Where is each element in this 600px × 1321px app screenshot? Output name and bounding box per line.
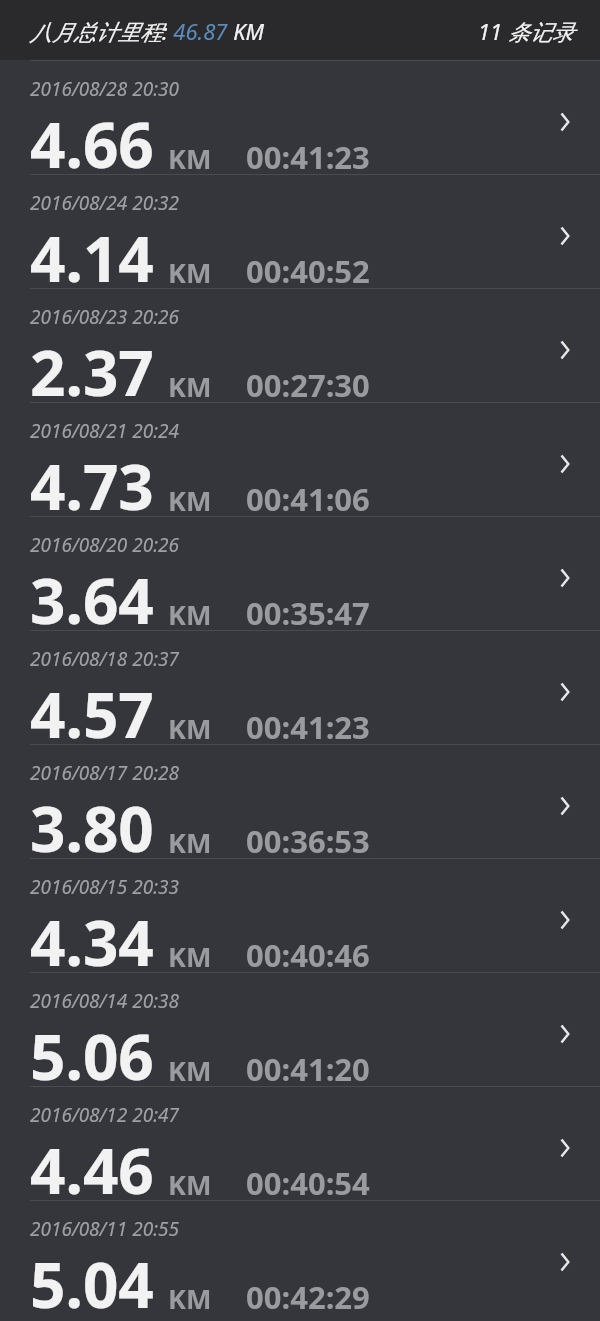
staticText: 4.46 [30, 1128, 154, 1212]
other: View run details [558, 908, 572, 932]
staticText: 八月总计里程: 46.87 KM [30, 16, 265, 46]
staticText: 2016/08/18 20:37 [30, 646, 179, 672]
staticText: 00:40:54 [246, 1162, 370, 1204]
other: View run details [558, 794, 572, 818]
staticText: 11 条记录 [478, 16, 574, 46]
staticText: KM [168, 1166, 212, 1203]
staticText: 00:35:47 [246, 592, 370, 634]
button[interactable]: 2016/08/23 20:26 [0, 288, 600, 402]
staticText: 00:42:29 [246, 1276, 370, 1318]
button[interactable]: 2016/08/28 20:30 [0, 60, 600, 174]
staticText: KM [168, 1280, 212, 1317]
other: View run details [558, 680, 572, 704]
staticText: 2016/08/12 20:47 [30, 1102, 179, 1128]
staticText: 5.06 [30, 1014, 154, 1098]
staticText: KM [168, 368, 212, 405]
staticText: 2016/08/21 20:24 [30, 418, 179, 444]
other: View run details [558, 1250, 572, 1274]
staticText: 00:41:23 [246, 706, 370, 748]
staticText: KM [168, 1052, 212, 1089]
staticText: 2016/08/28 20:30 [30, 76, 179, 102]
staticText: 2016/08/23 20:26 [30, 304, 179, 330]
staticText: 5.04 [30, 1242, 154, 1321]
staticText: 4.57 [30, 672, 154, 756]
staticText: KM [168, 710, 212, 747]
button[interactable]: 2016/08/15 20:33 [0, 858, 600, 972]
staticText: 3.64 [30, 558, 154, 642]
staticText: KM [168, 938, 212, 975]
button[interactable]: 2016/08/21 20:24 [0, 402, 600, 516]
staticText: 00:36:53 [246, 820, 370, 862]
other: View run details [558, 1136, 572, 1160]
staticText: 4.14 [30, 216, 154, 300]
staticText: KM [168, 140, 212, 177]
staticText: 2.37 [30, 330, 154, 414]
other: View run details [558, 110, 572, 134]
other: View run details [558, 224, 572, 248]
button[interactable]: 2016/08/11 20:55 [0, 1200, 600, 1314]
staticText: KM [168, 254, 212, 291]
staticText: 00:40:52 [246, 250, 370, 292]
staticText: KM [168, 482, 212, 519]
staticText: 4.66 [30, 102, 154, 186]
staticText: KM [168, 596, 212, 633]
button[interactable]: 2016/08/14 20:38 [0, 972, 600, 1086]
staticText: 00:41:20 [246, 1048, 370, 1090]
staticText: 2016/08/11 20:55 [30, 1216, 179, 1242]
staticText: 2016/08/20 20:26 [30, 532, 179, 558]
staticText: 00:40:46 [246, 934, 370, 976]
staticText: 2016/08/14 20:38 [30, 988, 179, 1014]
staticText: 00:41:23 [246, 136, 370, 178]
staticText: 2016/08/24 20:32 [30, 190, 179, 216]
button[interactable]: 2016/08/20 20:26 [0, 516, 600, 630]
other: View run details [558, 338, 572, 362]
staticText: 3.80 [30, 786, 154, 870]
other: View run details [558, 1022, 572, 1046]
staticText: 00:41:06 [246, 478, 370, 520]
other: View run details [558, 566, 572, 590]
staticText: 00:27:30 [246, 364, 370, 406]
button[interactable]: 2016/08/12 20:47 [0, 1086, 600, 1200]
staticText: 2016/08/15 20:33 [30, 874, 179, 900]
button[interactable]: 2016/08/17 20:28 [0, 744, 600, 858]
staticText: 4.34 [30, 900, 154, 984]
staticText: 2016/08/17 20:28 [30, 760, 179, 786]
staticText: KM [168, 824, 212, 861]
button[interactable]: 2016/08/24 20:32 [0, 174, 600, 288]
button[interactable]: 2016/08/18 20:37 [0, 630, 600, 744]
staticText: 4.73 [30, 444, 154, 528]
other: View run details [558, 452, 572, 476]
